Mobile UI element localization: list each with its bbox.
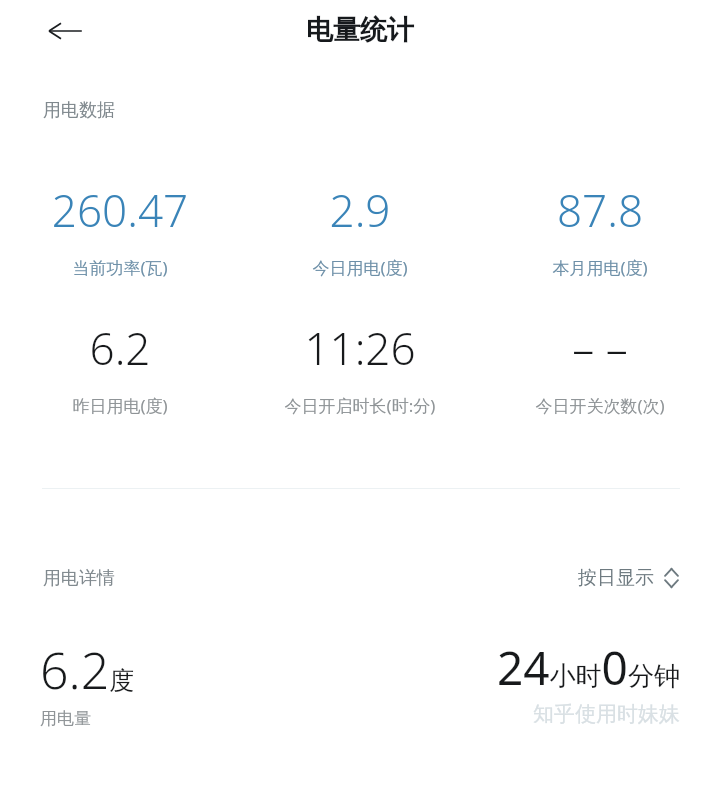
staticText: 当前功率(瓦) (0, 256, 240, 279)
staticText: 6.2 (0, 318, 240, 378)
staticText: 用电数据 (43, 99, 720, 122)
staticText: 用电量 (40, 708, 91, 729)
staticText: 今日开关次数(次) (480, 394, 720, 417)
button[interactable]: 87.8 (480, 180, 720, 279)
button[interactable]: 11:26 (240, 318, 480, 417)
staticText: 知乎使用时妹妹 (533, 701, 680, 727)
button[interactable]: 260.47 (0, 180, 240, 279)
button[interactable]: 按日显示 (578, 566, 680, 590)
staticText: 按日显示 (578, 566, 654, 590)
staticText: 260.47 (0, 180, 240, 240)
staticText: 2.9 (240, 180, 480, 240)
staticText: 6.2度 (40, 636, 135, 704)
staticText: 昨日用电(度) (0, 394, 240, 417)
staticText: 今日开启时长(时:分) (240, 394, 480, 417)
staticText: – – (480, 318, 720, 378)
staticText: 用电详情 (43, 567, 115, 590)
button[interactable]: 6.2 (0, 318, 240, 417)
staticText: 今日用电(度) (240, 256, 480, 279)
button[interactable]: – – (480, 318, 720, 417)
button[interactable]: Back (36, 2, 94, 60)
staticText: 本月用电(度) (480, 256, 720, 279)
button[interactable]: 2.9 (240, 180, 480, 279)
staticText: 11:26 (240, 318, 480, 378)
staticText: 电量统计 (0, 13, 720, 47)
staticText: 87.8 (480, 180, 720, 240)
staticText: 24小时0分钟 (497, 636, 680, 699)
